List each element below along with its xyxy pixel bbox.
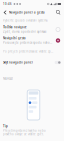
button[interactable]: Navigační gesta <box>0 35 64 46</box>
staticText: Vyberte způsob ovládání systému <box>3 19 48 22</box>
staticText: Skrýt navigační panel <box>3 61 33 64</box>
staticText: Tip <box>3 124 8 128</box>
staticText: 10:46 <box>3 2 12 6</box>
button[interactable]: Tlačítka navigace <box>0 24 64 35</box>
staticText: Tlačítka navigace <box>3 25 27 29</box>
button[interactable]: Skrýt navigační panel <box>0 57 64 68</box>
staticText: Po přejetí prstem zleva se vrátíte zpět <box>3 50 53 53</box>
button[interactable]: Back <box>2 8 8 16</box>
staticText: Přejetím prstem z levého nebo pravého ok… <box>3 129 46 136</box>
button[interactable]: Search <box>55 8 62 16</box>
staticText: Zpět, domů a poslední aplikace <box>3 30 47 33</box>
staticText: Posouvejte prstem zespodu nahoru <box>3 41 52 44</box>
staticText: NÁHLED <box>3 77 13 80</box>
staticText: Navigační gesta <box>3 36 26 40</box>
staticText: Navigační panel a gesta <box>9 11 45 14</box>
